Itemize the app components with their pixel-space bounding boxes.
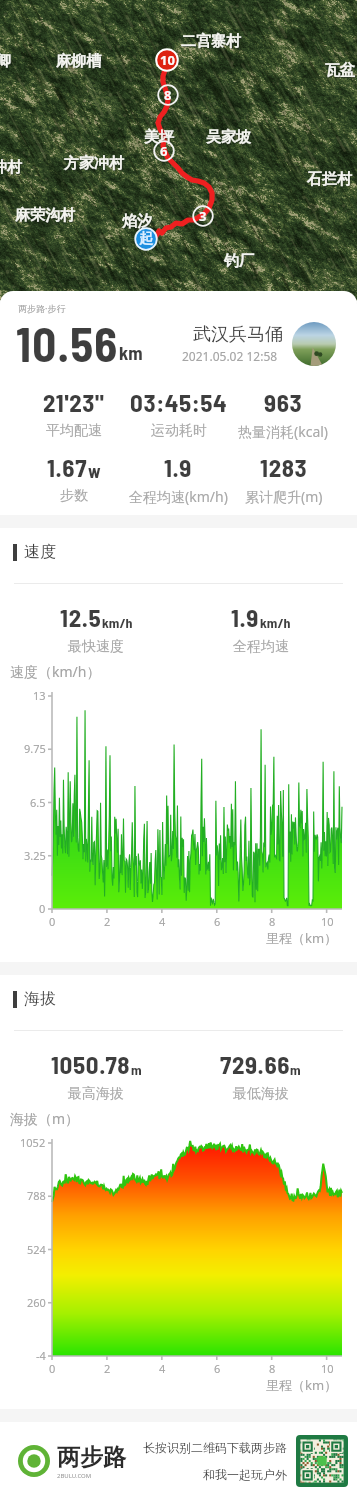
staticText: 6 — [160, 142, 168, 160]
staticText: 钓厂 — [224, 252, 254, 271]
staticText: 两步路 — [57, 1443, 126, 1472]
staticText: 步数 — [60, 487, 88, 505]
staticText: 石拦村 — [308, 171, 353, 190]
staticText: 10 — [160, 51, 175, 69]
staticText: 1050.78 — [51, 1049, 131, 1079]
staticText: m — [131, 1061, 142, 1078]
staticText: 0 — [49, 914, 56, 929]
staticText: 冲村 — [0, 158, 22, 177]
staticText: -4 — [36, 1348, 46, 1363]
staticText: 4 — [159, 1361, 166, 1376]
staticText: 2021.05.02 12:58 — [182, 348, 278, 364]
staticText: 10.56 — [16, 315, 119, 371]
staticText: 2 — [104, 914, 111, 929]
staticText: 吴家坡 — [206, 128, 251, 147]
staticText: 平均配速 — [46, 422, 102, 440]
staticText: 里程（km） — [266, 1376, 338, 1394]
staticText: 起 — [139, 230, 153, 248]
staticText: 热量消耗(kcal) — [238, 422, 329, 441]
staticText: 10 — [321, 1361, 334, 1376]
staticText: 卿 — [0, 52, 11, 71]
staticText: 0 — [49, 1361, 56, 1376]
staticText: 全程均速 — [233, 638, 289, 656]
staticText: 13 — [33, 688, 46, 703]
staticText: 260 — [27, 1295, 46, 1310]
staticText: 速度（km/h） — [10, 662, 101, 681]
staticText: 两步路·步行 — [18, 302, 66, 314]
staticText: 海拔（m） — [10, 1109, 80, 1128]
staticText: 6.5 — [30, 795, 46, 810]
staticText: 最低海拔 — [233, 1085, 289, 1103]
staticText: 4 — [159, 914, 166, 929]
staticText: 方家冲村 — [65, 155, 125, 174]
staticText: km — [119, 341, 143, 364]
staticText: 788 — [27, 1188, 46, 1203]
staticText: 1.67 — [47, 452, 88, 482]
staticText: 海拔 — [24, 989, 56, 1009]
staticText: 全程均速(km/h) — [129, 487, 228, 506]
staticText: 累计爬升(m) — [245, 487, 323, 506]
staticText: 3.25 — [24, 848, 46, 863]
staticText: 冲村 — [0, 159, 23, 178]
staticText: m — [290, 1061, 301, 1078]
staticText: 0 — [39, 901, 46, 916]
staticText: 方家冲村 — [64, 154, 124, 173]
staticText: 9.75 — [24, 741, 46, 756]
staticText: 石拦村 — [307, 170, 352, 189]
staticText: 长按识别二维码下载两步路 — [143, 1440, 287, 1455]
staticText: 8 — [269, 914, 276, 929]
staticText: 吴家坡 — [207, 129, 252, 148]
staticText: 6 — [214, 1361, 221, 1376]
staticText: 麻柳槽 — [56, 52, 101, 71]
staticText: 6 — [214, 914, 221, 929]
staticText: 963 — [264, 387, 303, 417]
staticText: 二宫寨村 — [181, 32, 241, 51]
staticText: 麻荣沟村 — [15, 206, 75, 225]
staticText: 钓厂 — [225, 253, 255, 272]
staticText: 12.5 — [60, 602, 102, 632]
staticText: 524 — [27, 1242, 46, 1257]
staticText: 8 — [164, 86, 172, 104]
staticText: 8 — [269, 1361, 276, 1376]
staticText: 1283 — [260, 452, 308, 482]
staticText: 21'23" — [43, 387, 105, 417]
staticText: 麻荣沟村 — [16, 207, 76, 226]
staticText: 焰汐 — [122, 212, 152, 231]
staticText: 美坪 — [144, 128, 174, 147]
staticText: 2 — [104, 1361, 111, 1376]
staticText: 和我一起玩户外 — [203, 1467, 287, 1482]
staticText: 最快速度 — [68, 638, 124, 656]
staticText: 里程（km） — [266, 929, 338, 947]
staticText: 3 — [199, 207, 207, 225]
staticText: w — [88, 460, 101, 482]
staticText: km/h — [102, 614, 133, 631]
staticText: 麻柳槽 — [57, 53, 102, 72]
staticText: 运动耗时 — [151, 422, 207, 440]
staticText: 1052 — [20, 1135, 46, 1150]
staticText: 瓦盆 — [326, 62, 356, 81]
staticText: 1.9 — [231, 602, 260, 632]
staticText: 1.9 — [164, 452, 193, 482]
staticText: 卿 — [0, 53, 12, 72]
staticText: 二宫寨村 — [182, 33, 242, 52]
staticText: 最高海拔 — [68, 1085, 124, 1103]
staticText: 729.66 — [220, 1049, 290, 1079]
staticText: 焰汐 — [123, 213, 153, 232]
staticText: 10 — [321, 914, 334, 929]
staticText: 瓦盆 — [325, 61, 355, 80]
staticText: 03:45:54 — [130, 387, 228, 417]
staticText: km/h — [260, 614, 291, 631]
staticText: 美坪 — [145, 129, 175, 148]
staticText: 速度 — [24, 542, 56, 562]
staticText: 武汉兵马俑 — [193, 323, 283, 346]
staticText: 2BULU.COM — [57, 1472, 92, 1480]
